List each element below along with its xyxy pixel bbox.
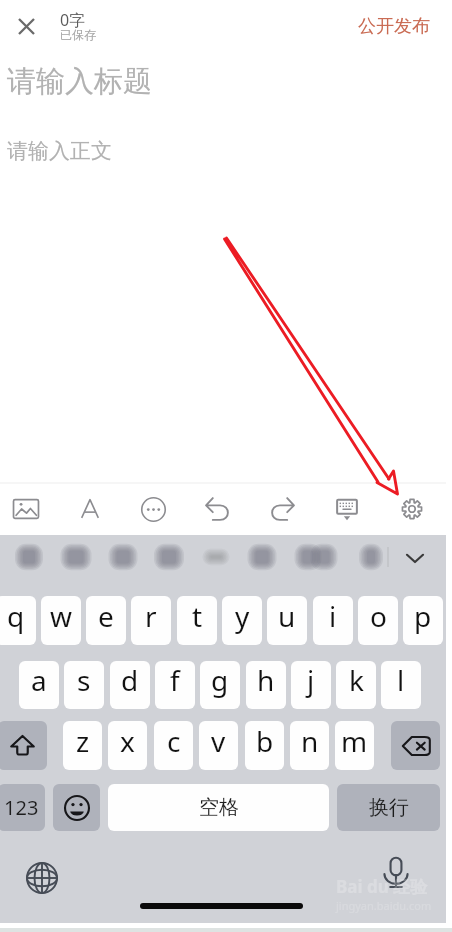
button[interactable]: w: [41, 596, 81, 645]
button[interactable]: p: [403, 596, 443, 645]
button[interactable]: 123: [0, 784, 45, 831]
button[interactable]: g: [200, 661, 240, 709]
button[interactable]: Candidate: [63, 541, 90, 573]
staticText: w: [50, 597, 73, 635]
staticText: k: [349, 661, 364, 699]
button[interactable]: k: [336, 661, 376, 709]
button[interactable]: 空格: [108, 784, 329, 831]
button[interactable]: Shift: [0, 721, 47, 770]
button[interactable]: b: [245, 721, 284, 770]
staticText: n: [301, 722, 319, 760]
staticText: x: [120, 722, 135, 760]
button[interactable]: n: [290, 721, 329, 770]
button[interactable]: Keyboard: [325, 487, 369, 531]
button[interactable]: Candidate: [111, 541, 136, 573]
button[interactable]: Emoji: [53, 784, 100, 831]
staticText: m: [341, 722, 368, 760]
staticText: y: [235, 597, 250, 635]
button[interactable]: 换行: [337, 784, 440, 831]
staticText: r: [145, 597, 157, 635]
staticText: j: [307, 661, 315, 699]
button[interactable]: Undo: [196, 487, 240, 531]
staticText: b: [256, 722, 274, 760]
button[interactable]: Backspace: [391, 721, 440, 770]
button[interactable]: Candidate: [297, 541, 320, 573]
staticText: d: [121, 661, 139, 699]
button[interactable]: v: [199, 721, 238, 770]
button[interactable]: j: [291, 661, 331, 709]
button[interactable]: y: [222, 596, 262, 645]
button[interactable]: Candidate: [313, 541, 336, 573]
button[interactable]: d: [110, 661, 150, 709]
staticText: z: [76, 722, 90, 760]
button[interactable]: z: [63, 721, 102, 770]
button[interactable]: l: [381, 661, 421, 709]
button[interactable]: Close: [6, 6, 46, 46]
button[interactable]: Switch language: [22, 858, 62, 898]
button[interactable]: x: [108, 721, 147, 770]
button[interactable]: c: [154, 721, 193, 770]
staticText: g: [211, 661, 229, 699]
button[interactable]: a: [19, 661, 59, 709]
staticText: 换行: [369, 795, 409, 820]
staticText: v: [211, 722, 226, 760]
staticText: 空格: [199, 795, 239, 820]
staticText: a: [31, 661, 47, 699]
staticText: e: [98, 597, 114, 635]
button[interactable]: Settings: [390, 487, 434, 531]
staticText: 请输入标题: [7, 63, 152, 100]
button[interactable]: Text format: [68, 487, 112, 531]
button[interactable]: Candidate: [156, 541, 182, 573]
staticText: 请输入正文: [7, 138, 112, 164]
button[interactable]: o: [358, 596, 398, 645]
button[interactable]: f: [155, 661, 195, 709]
button[interactable]: e: [86, 596, 126, 645]
staticText: l: [397, 661, 405, 699]
button[interactable]: Candidate: [205, 541, 228, 573]
button[interactable]: More: [131, 487, 175, 531]
button[interactable]: Redo: [260, 487, 304, 531]
button[interactable]: 公开发布: [358, 15, 430, 38]
button[interactable]: q: [0, 596, 36, 645]
staticText: t: [192, 597, 203, 635]
staticText: s: [77, 661, 91, 699]
button[interactable]: Voice input: [376, 853, 416, 893]
staticText: o: [370, 597, 387, 635]
staticText: 0字: [60, 9, 86, 31]
button[interactable]: Insert image: [4, 487, 48, 531]
button[interactable]: s: [64, 661, 104, 709]
staticText: i: [329, 597, 337, 635]
button[interactable]: u: [267, 596, 307, 645]
button[interactable]: h: [246, 661, 286, 709]
button[interactable]: r: [131, 596, 171, 645]
button[interactable]: Hide keyboard: [398, 541, 432, 575]
staticText: f: [170, 661, 180, 699]
staticText: 123: [4, 794, 39, 821]
button[interactable]: Candidate: [361, 541, 381, 573]
button[interactable]: i: [313, 596, 353, 645]
staticText: p: [414, 597, 432, 635]
staticText: c: [167, 722, 181, 760]
staticText: q: [7, 597, 25, 635]
staticText: h: [257, 661, 275, 699]
button[interactable]: m: [335, 721, 374, 770]
staticText: 公开发布: [358, 15, 430, 38]
staticText: 已保存: [60, 27, 96, 42]
button[interactable]: t: [177, 596, 217, 645]
staticText: Bai du 经验: [336, 875, 428, 898]
button[interactable]: Candidate: [250, 541, 275, 573]
staticText: u: [278, 597, 296, 635]
button[interactable]: Candidate: [17, 541, 41, 573]
